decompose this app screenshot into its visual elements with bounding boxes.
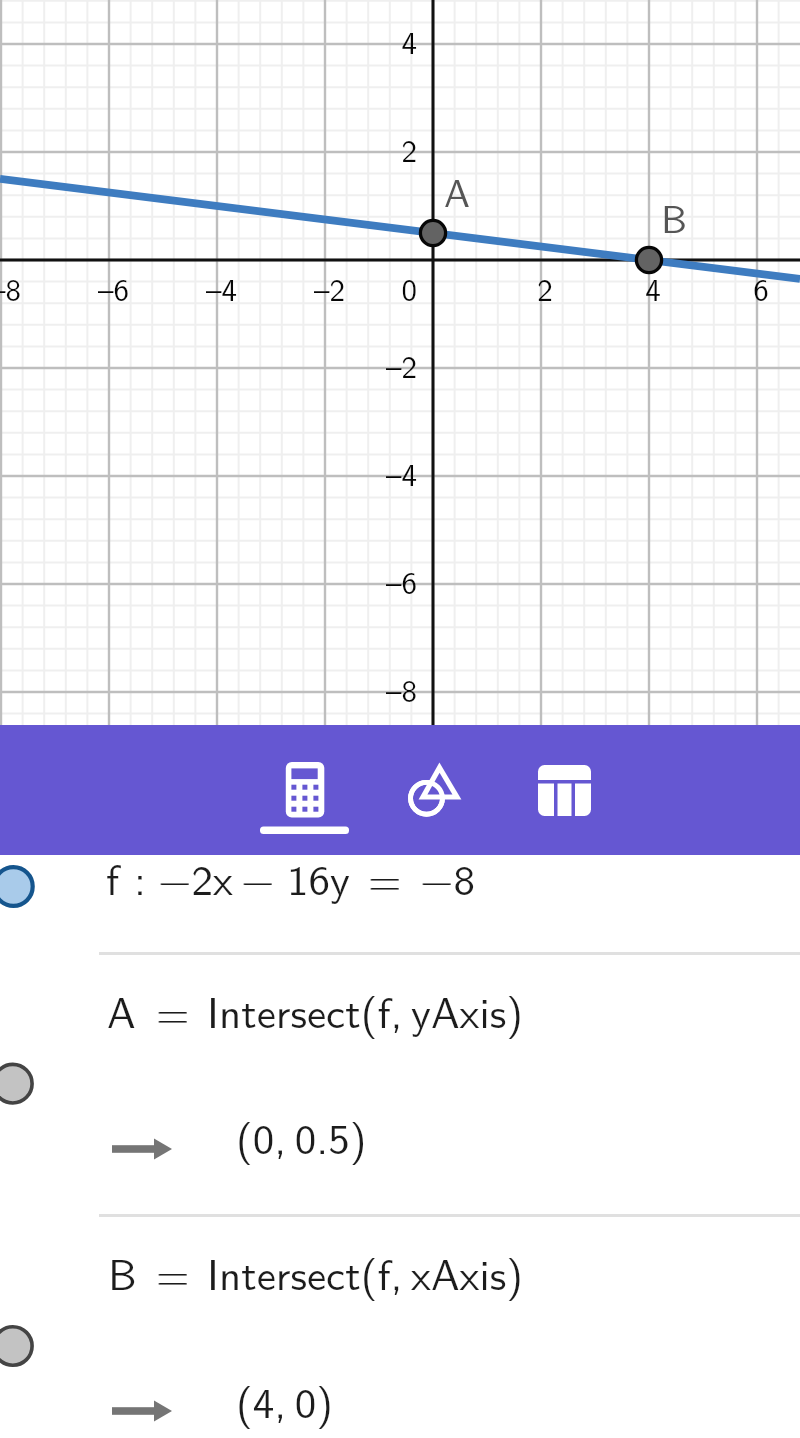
staticText: 2 xyxy=(401,126,417,171)
staticText: –6 xyxy=(98,265,129,310)
staticText: –2 xyxy=(386,342,417,387)
staticText: Intersect(f, yAxis) xyxy=(207,978,523,1041)
staticText: : xyxy=(134,845,146,908)
button[interactable]: Geometry xyxy=(384,725,466,855)
staticText: 2 xyxy=(537,265,553,310)
staticText: A xyxy=(107,978,136,1041)
button[interactable] xyxy=(0,952,800,1214)
staticText: –4 xyxy=(386,450,417,495)
staticText: − xyxy=(241,845,275,908)
staticText: = xyxy=(368,845,402,908)
staticText: Intersect(f, xAxis) xyxy=(207,1240,523,1303)
staticText: –8 xyxy=(386,666,417,711)
staticText: B xyxy=(108,1240,137,1303)
staticText: –2 xyxy=(314,265,345,310)
staticText: (4, 0) xyxy=(236,1368,334,1431)
staticText: (0, 0.5) xyxy=(236,1104,367,1167)
staticText: 0 xyxy=(401,265,417,310)
button[interactable]: Graphing calculator xyxy=(256,725,354,855)
staticText: = xyxy=(156,1240,190,1303)
staticText: f xyxy=(106,845,120,908)
staticText: −8 xyxy=(420,845,475,908)
staticText: −2x xyxy=(158,845,233,908)
button[interactable]: Table xyxy=(524,725,606,855)
staticText: 16y xyxy=(287,845,350,908)
staticText: 4 xyxy=(401,18,417,63)
button[interactable] xyxy=(0,853,800,952)
staticText: –6 xyxy=(386,558,417,603)
staticText: –4 xyxy=(206,265,237,310)
staticText: 4 xyxy=(645,265,661,310)
staticText: 6 xyxy=(753,265,769,310)
staticText: –8 xyxy=(0,265,21,310)
staticText: = xyxy=(156,978,190,1041)
staticText: B xyxy=(661,188,688,245)
staticText: A xyxy=(444,162,471,219)
button[interactable] xyxy=(0,1214,800,1438)
